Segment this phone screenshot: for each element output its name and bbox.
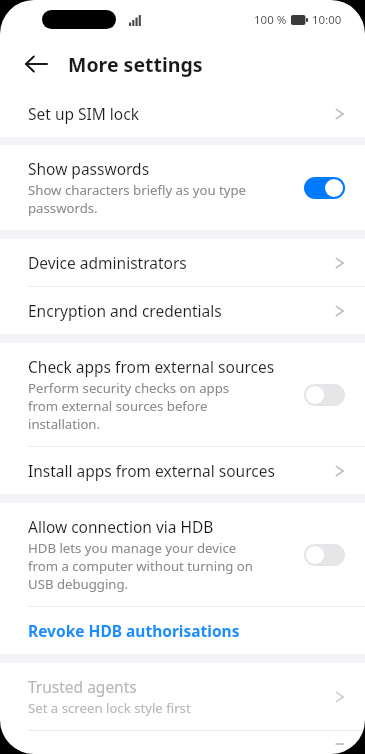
staticText: Revoke HDB authorisations [28,620,240,641]
staticText: Set a screen lock style first [28,699,191,717]
staticText: 100 % [254,12,287,28]
staticText: Encryption and credentials [28,300,222,321]
button[interactable]: Show passwords [0,145,365,230]
button[interactable]: Usage information access [0,731,365,754]
staticText: More settings [68,51,203,78]
staticText: Check apps from external sources [28,356,275,377]
button[interactable]: Back [18,46,54,82]
button[interactable]: Trusted agents [0,663,365,730]
button[interactable] [304,384,345,406]
staticText: Show characters briefly as you type pass… [28,181,256,217]
staticText: 10:00 [312,12,342,28]
button[interactable] [304,544,345,566]
button[interactable]: Set up SIM lock [0,90,365,137]
staticText: Allow connection via HDB [28,516,214,537]
button[interactable] [304,177,345,199]
button[interactable]: Revoke HDB authorisations [0,607,365,654]
staticText: Set up SIM lock [28,103,139,124]
staticText: Perform security checks on apps from ext… [28,379,262,433]
staticText: Trusted agents [28,676,137,697]
staticText: HDB lets you manage your device from a c… [28,539,260,593]
button[interactable]: Allow connection via HDB [0,503,365,606]
button[interactable]: Install apps from external sources [0,447,365,494]
staticText: Device administrators [28,252,187,273]
button[interactable]: Encryption and credentials [0,287,365,334]
button[interactable]: Device administrators [0,239,365,286]
staticText: Install apps from external sources [28,460,275,481]
button[interactable]: Check apps from external sources [0,343,365,446]
staticText: Show passwords [28,158,150,179]
